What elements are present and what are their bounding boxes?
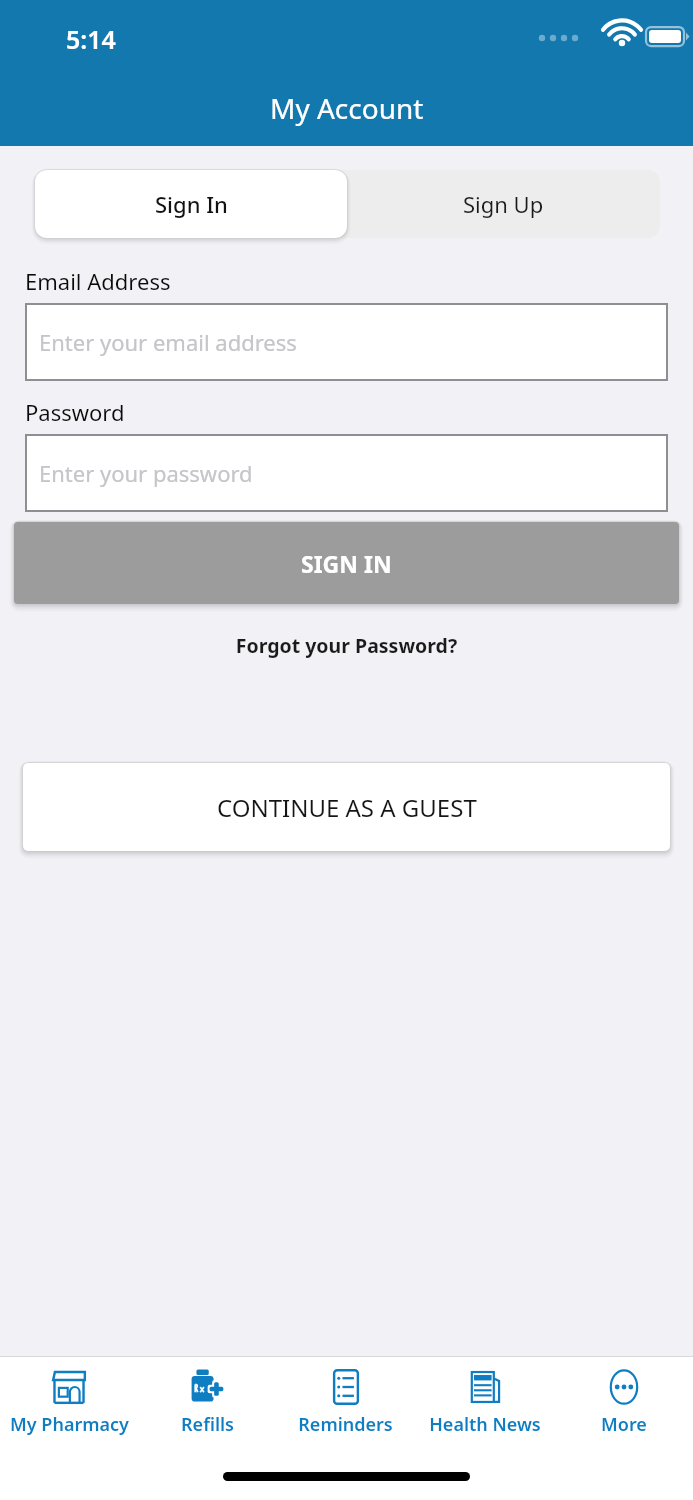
staticText: Reminders (298, 1412, 393, 1437)
button[interactable]: Enter your email address (25, 303, 668, 381)
button[interactable]: Refills (138, 1357, 276, 1437)
staticText: Health News (429, 1412, 541, 1437)
staticText: Enter your email address (39, 327, 297, 357)
button[interactable]: Sign Up (347, 170, 660, 238)
staticText: More (601, 1412, 647, 1437)
button[interactable]: CONTINUE AS A GUEST (23, 763, 670, 851)
staticText: Enter your password (39, 458, 253, 488)
button[interactable]: Enter your password (25, 434, 668, 512)
staticText: CONTINUE AS A GUEST (217, 791, 477, 824)
other: Health News (463, 1365, 507, 1409)
staticText: My Account (270, 89, 424, 127)
other: My Pharmacy (47, 1365, 91, 1409)
button[interactable]: More (554, 1357, 693, 1437)
button[interactable]: Forgot your Password? (0, 626, 693, 665)
button[interactable]: Sign In (35, 170, 347, 238)
staticText: Email Address (25, 266, 171, 296)
staticText: SIGN IN (301, 548, 392, 579)
staticText: Sign In (155, 189, 228, 219)
staticText: Refills (181, 1412, 234, 1437)
other: Reminders (324, 1365, 368, 1409)
button[interactable]: My Pharmacy (0, 1357, 138, 1437)
staticText: Password (25, 397, 125, 427)
button[interactable]: SIGN IN (14, 522, 679, 604)
staticText: 5:14 (66, 22, 116, 56)
other: Refills (185, 1365, 229, 1409)
other: More (602, 1365, 646, 1409)
staticText: Sign Up (463, 189, 544, 219)
staticText: My Pharmacy (10, 1412, 129, 1437)
button[interactable]: Health News (415, 1357, 554, 1437)
button[interactable]: Reminders (276, 1357, 415, 1437)
